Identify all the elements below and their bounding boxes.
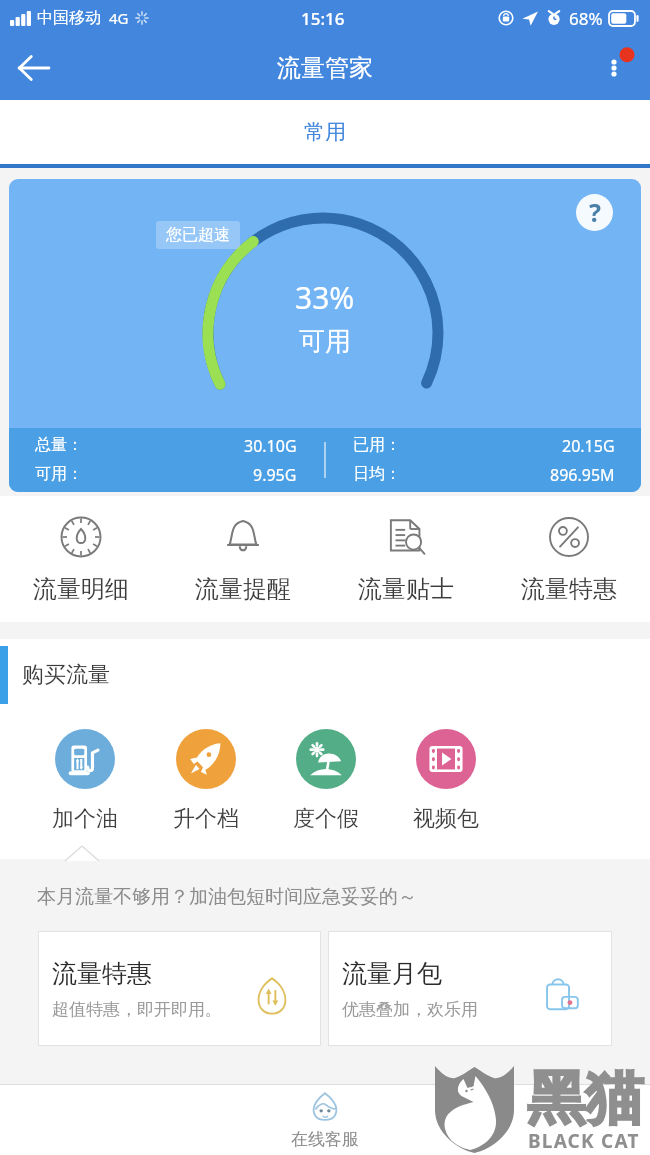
button[interactable]: 流量特惠: [38, 931, 321, 1046]
staticText: 在线客服: [291, 1129, 359, 1150]
staticText: 流量月包: [342, 958, 442, 989]
staticText: 超值特惠，即开即用。: [52, 999, 222, 1020]
staticText: 30.10G: [244, 435, 297, 457]
button[interactable]: More options: [590, 44, 638, 92]
staticText: 896.95M: [550, 464, 615, 486]
staticText: 流量特惠: [521, 574, 617, 604]
staticText: 总量：: [35, 435, 83, 455]
staticText: 流量特惠: [52, 958, 152, 989]
staticText: 68%: [569, 7, 603, 30]
staticText: 日均：: [353, 464, 401, 484]
staticText: 流量提醒: [195, 574, 291, 604]
button[interactable]: 流量贴士: [324, 496, 487, 622]
staticText: 本月流量不够用？加油包短时间应急妥妥的～: [37, 885, 417, 909]
staticText: 度个假: [293, 805, 359, 833]
staticText: 优惠叠加，欢乐用: [342, 999, 478, 1020]
staticText: 可用：: [35, 464, 83, 484]
button[interactable]: 加个油: [24, 729, 145, 833]
button[interactable]: 流量提醒: [162, 496, 324, 622]
button[interactable]: 流量特惠: [487, 496, 650, 622]
staticText: 9.95G: [253, 464, 297, 486]
button[interactable]: 在线客服: [291, 1091, 359, 1150]
button[interactable]: 度个假: [266, 729, 386, 833]
staticText: 视频包: [413, 805, 479, 833]
button[interactable]: 流量月包: [328, 931, 612, 1046]
staticText: 15:16: [301, 7, 345, 30]
staticText: 黑猫: [527, 1062, 643, 1135]
staticText: 您已超速: [166, 225, 230, 245]
staticText: 已用：: [353, 435, 401, 455]
button[interactable]: 升个档: [145, 729, 266, 833]
staticText: 可用: [299, 325, 351, 358]
staticText: 20.15G: [562, 435, 615, 457]
staticText: 4G: [109, 8, 129, 28]
button[interactable]: 视频包: [386, 729, 506, 833]
staticText: 加个油: [52, 805, 118, 833]
button[interactable]: 流量明细: [0, 496, 162, 622]
staticText: 升个档: [173, 805, 239, 833]
staticText: 常用: [304, 119, 346, 145]
staticText: ?: [589, 195, 601, 229]
staticText: 流量贴士: [358, 574, 454, 604]
staticText: 购买流量: [22, 661, 110, 689]
button[interactable]: Back: [6, 40, 62, 96]
button[interactable]: Help: [576, 194, 613, 231]
staticText: 中国移动: [37, 8, 101, 28]
staticText: BLACK CAT: [528, 1128, 640, 1154]
staticText: 33%: [295, 277, 355, 318]
staticText: 流量明细: [33, 574, 129, 604]
button[interactable]: 常用: [0, 100, 650, 164]
staticText: 流量管家: [277, 53, 373, 83]
